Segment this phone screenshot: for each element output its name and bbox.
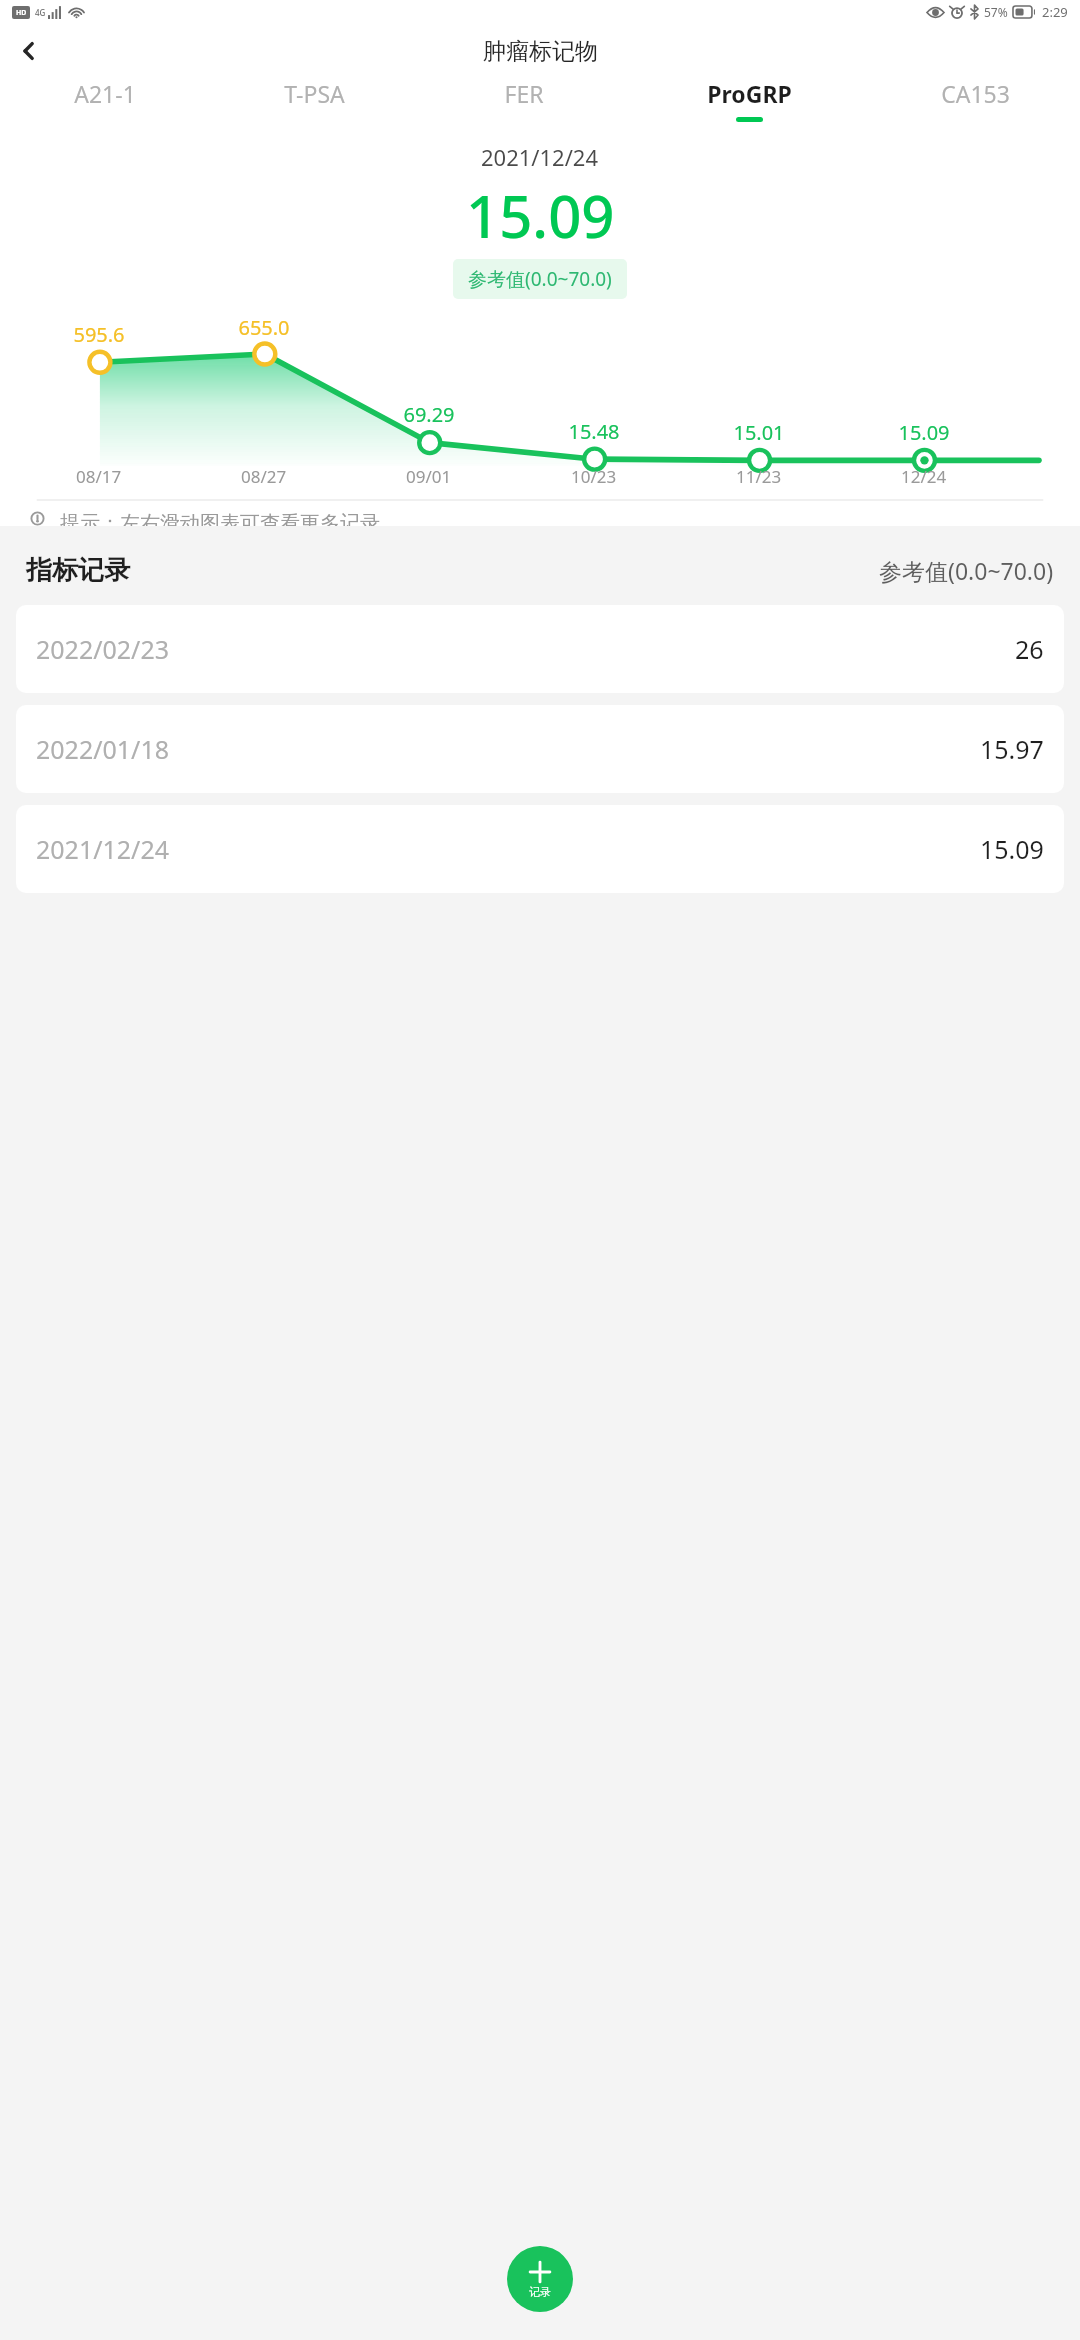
button[interactable]: 2022/01/18	[16, 705, 1064, 793]
button[interactable]: 添加记录	[507, 2246, 573, 2312]
button[interactable]: A21-1	[0, 78, 209, 128]
staticText: 15.09	[980, 832, 1044, 866]
staticText: 4G	[35, 7, 46, 18]
staticText: 69.29	[403, 401, 455, 428]
staticText: CA153	[941, 78, 1010, 109]
staticText: 2021/12/24	[481, 142, 599, 172]
staticText: ProGRP	[707, 78, 792, 109]
staticText: 08/17	[76, 465, 122, 488]
staticText: T-PSA	[284, 78, 345, 109]
staticText: 15.48	[568, 418, 620, 445]
staticText: 595.6	[73, 321, 125, 348]
staticText: 15.09	[898, 419, 950, 446]
staticText: 参考值(0.0~70.0)	[879, 555, 1054, 586]
staticText: 指标记录	[26, 554, 130, 587]
staticText: 2022/02/23	[36, 632, 170, 666]
staticText: 655.0	[238, 314, 290, 341]
staticText: 09/01	[406, 465, 452, 488]
staticText: FER	[504, 78, 544, 109]
staticText: HD	[16, 8, 27, 18]
staticText: 记录	[529, 2285, 551, 2299]
staticText: 11/23	[736, 465, 782, 488]
staticText: 参考值(0.0~70.0)	[468, 266, 612, 292]
staticText: 10/23	[571, 465, 617, 488]
staticText: 2:29	[1042, 3, 1068, 21]
staticText: 12/24	[901, 465, 947, 488]
button[interactable]: 2022/02/23	[16, 605, 1064, 693]
staticText: 26	[1015, 632, 1044, 666]
button[interactable]: ProGRP	[629, 78, 870, 128]
staticText: A21-1	[74, 78, 136, 109]
staticText: 15.09	[466, 176, 615, 255]
button[interactable]: FER	[419, 78, 629, 128]
staticText: 提示：左右滑动图表可查看更多记录	[60, 511, 380, 526]
button[interactable]: CA153	[870, 78, 1080, 128]
staticText: 2022/01/18	[36, 732, 170, 766]
staticText: 57%	[984, 4, 1008, 20]
button[interactable]: 返回	[6, 28, 52, 74]
staticText: 肿瘤标记物	[483, 37, 598, 66]
button[interactable]: 2021/12/24	[16, 805, 1064, 893]
staticText: 15.01	[733, 419, 785, 446]
staticText: 08/27	[241, 465, 287, 488]
staticText: 2021/12/24	[36, 832, 170, 866]
button[interactable]: T-PSA	[209, 78, 419, 128]
staticText: 15.97	[980, 732, 1044, 766]
